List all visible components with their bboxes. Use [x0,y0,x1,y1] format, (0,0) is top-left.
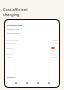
staticText: charging [3,12,20,17]
button[interactable] [7,47,57,49]
staticText: Tonight 22:00 [7,28,20,31]
button[interactable] [7,57,57,58]
staticText: Saved 3.20 EUR [7,32,21,35]
button[interactable]: Home [13,80,18,85]
button[interactable] [7,43,57,44]
button[interactable]: Profile [46,80,51,85]
staticText: Summary [7,76,16,79]
button[interactable]: Stats [35,80,40,85]
button[interactable] [7,54,57,55]
staticText: Cost-efficient [3,7,28,12]
button[interactable] [7,40,57,41]
button[interactable]: Charge [24,80,29,85]
staticText: Charging plan [7,24,23,27]
